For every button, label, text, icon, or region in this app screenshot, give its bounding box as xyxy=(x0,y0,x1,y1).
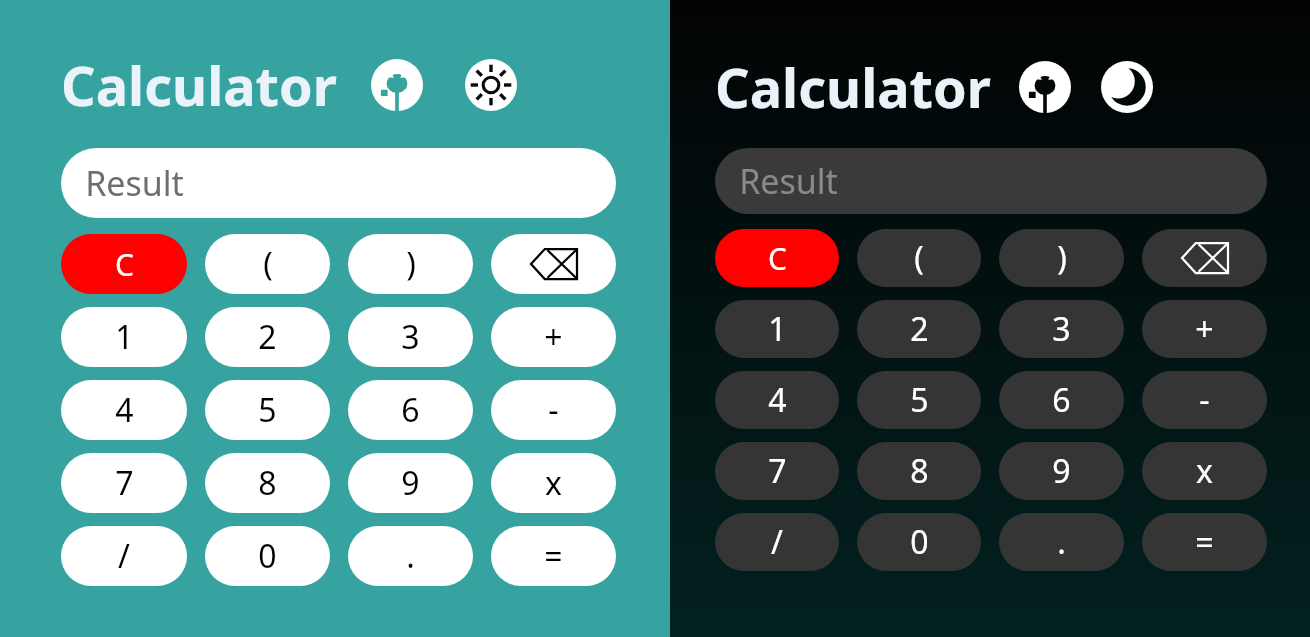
button[interactable]: - xyxy=(1142,371,1267,429)
staticText: 3 xyxy=(1052,307,1071,351)
button[interactable]: C xyxy=(61,234,187,294)
button[interactable]: 0 xyxy=(857,513,981,571)
button[interactable]: Backspace xyxy=(491,234,616,294)
staticText: 0 xyxy=(258,534,277,578)
button[interactable]: 3 xyxy=(348,307,473,367)
button[interactable]: 5 xyxy=(857,371,981,429)
staticText: 8 xyxy=(910,449,929,493)
button[interactable]: 1 xyxy=(61,307,187,367)
staticText: Calculator xyxy=(61,48,337,122)
button[interactable]: . xyxy=(999,513,1124,571)
button[interactable]: 0 xyxy=(205,526,330,586)
button[interactable]: Backspace xyxy=(1142,229,1267,287)
staticText: . xyxy=(1057,520,1066,564)
button[interactable]: 8 xyxy=(857,442,981,500)
staticText: 5 xyxy=(910,378,929,422)
staticText: Result xyxy=(85,160,184,206)
button[interactable]: GitHub repository xyxy=(1017,59,1073,115)
button[interactable]: ) xyxy=(999,229,1124,287)
button[interactable]: = xyxy=(1142,513,1267,571)
staticText: x xyxy=(1196,449,1213,493)
button[interactable]: GitHub repository xyxy=(369,57,425,113)
staticText: + xyxy=(544,315,563,359)
button[interactable]: 2 xyxy=(857,300,981,358)
other: Backspace xyxy=(1182,243,1228,273)
staticText: 7 xyxy=(115,461,134,505)
staticText: 4 xyxy=(768,378,787,422)
staticText: 4 xyxy=(115,388,134,432)
staticText: 5 xyxy=(258,388,277,432)
button[interactable]: 7 xyxy=(61,453,187,513)
button[interactable]: ) xyxy=(348,234,473,294)
staticText: 9 xyxy=(401,461,420,505)
staticText: ( xyxy=(263,242,273,286)
button[interactable]: Switch to dark theme xyxy=(463,57,519,113)
button[interactable]: Switch to light theme xyxy=(1099,59,1155,115)
button[interactable]: x xyxy=(491,453,616,513)
staticText: Calculator xyxy=(715,50,991,124)
staticText: / xyxy=(771,520,783,564)
staticText: - xyxy=(548,388,559,432)
button[interactable]: / xyxy=(715,513,839,571)
staticText: 1 xyxy=(768,307,787,351)
staticText: ) xyxy=(406,242,416,286)
staticText: ( xyxy=(914,236,924,280)
button[interactable]: 6 xyxy=(348,380,473,440)
staticText: . xyxy=(406,534,415,578)
staticText: x xyxy=(545,461,562,505)
button[interactable]: C xyxy=(715,229,839,287)
staticText: 9 xyxy=(1052,449,1071,493)
staticText: + xyxy=(1195,307,1214,351)
staticText: 3 xyxy=(401,315,420,359)
staticText: C xyxy=(115,244,134,285)
button[interactable]: 7 xyxy=(715,442,839,500)
staticText: ) xyxy=(1057,236,1067,280)
staticText: = xyxy=(544,534,563,578)
staticText: - xyxy=(1199,378,1210,422)
button[interactable]: 3 xyxy=(999,300,1124,358)
staticText: 1 xyxy=(115,315,134,359)
staticText: C xyxy=(768,238,787,279)
staticText: 7 xyxy=(768,449,787,493)
button[interactable]: 2 xyxy=(205,307,330,367)
button[interactable]: 1 xyxy=(715,300,839,358)
staticText: Result xyxy=(739,158,838,204)
button[interactable]: 4 xyxy=(715,371,839,429)
button[interactable]: 9 xyxy=(999,442,1124,500)
button[interactable]: 4 xyxy=(61,380,187,440)
button[interactable]: . xyxy=(348,526,473,586)
staticText: 6 xyxy=(1052,378,1071,422)
staticText: 0 xyxy=(910,520,929,564)
button[interactable]: ( xyxy=(205,234,330,294)
button[interactable]: = xyxy=(491,526,616,586)
button[interactable]: Result xyxy=(61,148,616,218)
button[interactable]: 5 xyxy=(205,380,330,440)
button[interactable]: x xyxy=(1142,442,1267,500)
button[interactable]: Result xyxy=(715,148,1267,214)
button[interactable]: 8 xyxy=(205,453,330,513)
other: Backspace xyxy=(531,249,577,279)
staticText: = xyxy=(1195,520,1214,564)
staticText: 8 xyxy=(258,461,277,505)
button[interactable]: ( xyxy=(857,229,981,287)
button[interactable]: + xyxy=(1142,300,1267,358)
button[interactable]: 6 xyxy=(999,371,1124,429)
button[interactable]: / xyxy=(61,526,187,586)
staticText: 2 xyxy=(910,307,929,351)
button[interactable]: + xyxy=(491,307,616,367)
staticText: 2 xyxy=(258,315,277,359)
staticText: 6 xyxy=(401,388,420,432)
button[interactable]: 9 xyxy=(348,453,473,513)
staticText: / xyxy=(118,534,130,578)
button[interactable]: - xyxy=(491,380,616,440)
